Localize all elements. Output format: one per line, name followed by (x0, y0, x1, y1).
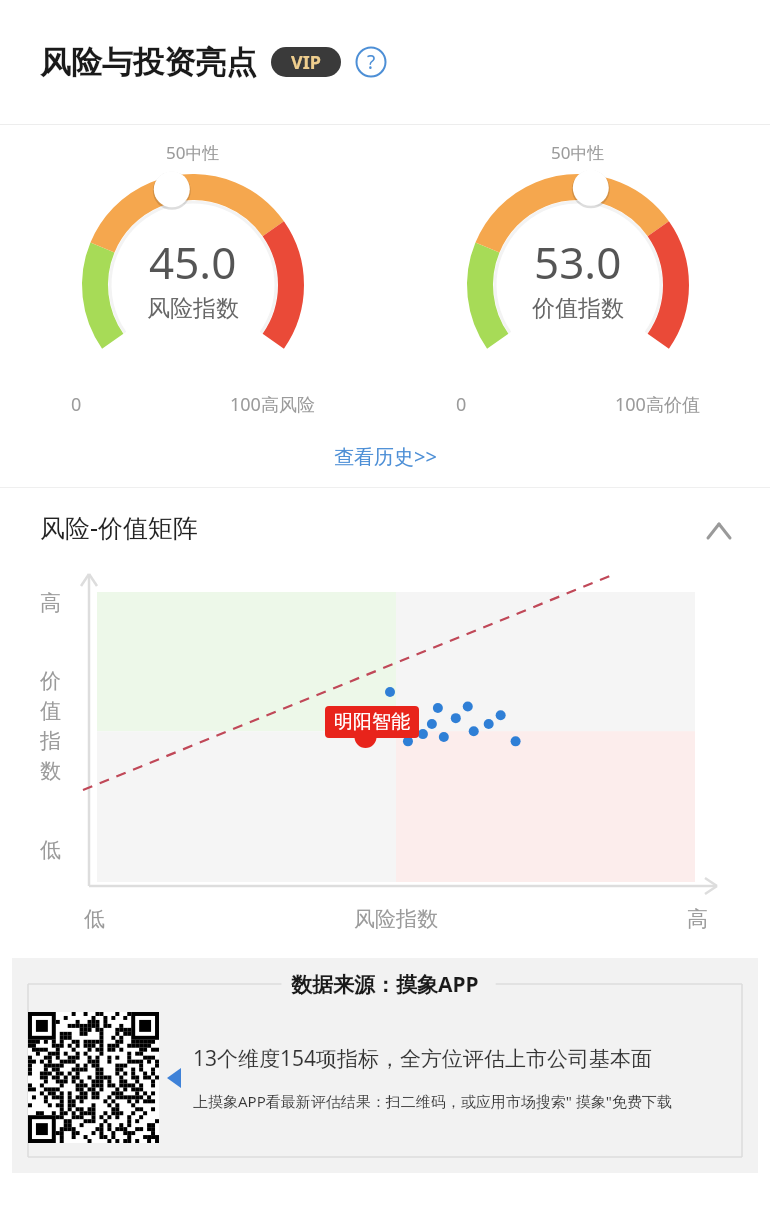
staticText: 风险与投资亮点 (40, 43, 257, 82)
staticText: VIP (291, 50, 321, 75)
staticText: 风险指数 (147, 294, 239, 323)
staticText: 0 (71, 392, 82, 417)
staticText: 低 (84, 906, 105, 932)
staticText: 0 (456, 392, 467, 417)
button[interactable]: 明阳智能 (325, 706, 419, 738)
staticText: 低 (40, 837, 61, 863)
button[interactable]: 风险-价值矩阵 (0, 488, 770, 566)
staticText: 风险-价值矩阵 (40, 510, 199, 544)
button[interactable]: VIP (271, 47, 341, 77)
staticText: ? (367, 49, 376, 75)
staticText: 45.0 (149, 232, 237, 292)
staticText: 数据来源：摸象APP (291, 970, 479, 999)
staticText: 50中性 (166, 141, 220, 164)
staticText: 价值指数 (532, 294, 624, 323)
button[interactable]: Help (355, 46, 387, 78)
staticText: 高 (40, 590, 61, 616)
staticText: 100高价值 (615, 392, 700, 417)
staticText: 风险指数 (354, 906, 438, 932)
staticText: 53.0 (534, 232, 622, 292)
other: Collapse (704, 512, 734, 542)
staticText: 100高风险 (230, 392, 315, 417)
staticText: 查看历史>> (334, 443, 437, 470)
staticText: 高 (687, 906, 708, 932)
button[interactable]: 查看历史>> (322, 437, 449, 476)
staticText: 13个维度154项指标，全方位评估上市公司基本面 (193, 1044, 653, 1073)
staticText: 50中性 (551, 141, 605, 164)
staticText: 价 值 指 数 (40, 668, 61, 785)
staticText: 上摸象APP看最新评估结果：扫二维码，或应用市场搜索" 摸象"免费下载 (193, 1091, 672, 1111)
staticText: 明阳智能 (334, 710, 410, 734)
